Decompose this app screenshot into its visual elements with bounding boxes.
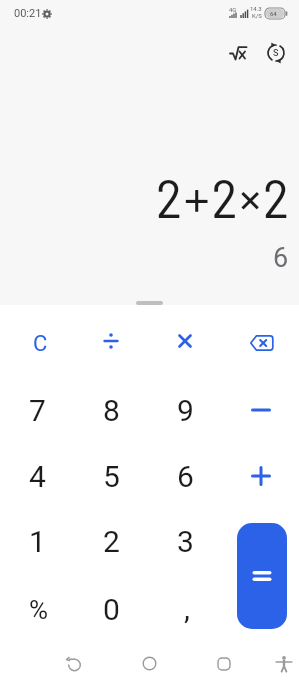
button[interactable] [58,648,90,680]
button[interactable] [79,309,143,373]
staticText: 14.3 [250,5,262,12]
button[interactable] [208,648,240,680]
button[interactable]: 9 [153,378,217,442]
staticText: 0 [103,592,120,627]
button[interactable] [229,444,293,508]
button[interactable]: 8 [79,378,143,442]
button[interactable]: 5 [79,444,143,508]
button[interactable]: 7 [5,378,69,442]
button[interactable] [268,648,299,680]
button[interactable]: 4 [5,444,69,508]
staticText: 3 [177,524,194,559]
button[interactable]: 2 [79,509,143,573]
button[interactable]: , [155,576,219,640]
button[interactable] [237,523,287,629]
staticText: % [29,595,49,625]
button[interactable] [134,648,166,680]
staticText: 5 [103,459,120,494]
staticText: S [273,48,279,59]
button[interactable] [230,311,294,375]
staticText: 4 [29,459,46,494]
button[interactable]: 6 [153,444,217,508]
staticText: , [184,591,190,626]
button[interactable]: 0 [79,577,143,641]
staticText: C [33,331,48,357]
staticText: 8 [103,393,120,428]
button[interactable]: 1 [5,509,69,573]
button[interactable]: % [7,578,71,642]
button[interactable] [153,309,217,373]
button[interactable] [229,378,293,442]
staticText: 64 [270,10,277,17]
staticText: 6 [177,459,194,494]
staticText: 6 [273,242,289,274]
button[interactable] [224,40,252,66]
staticText: 2 [103,524,120,559]
staticText: 00:21 [14,7,42,20]
staticText: K/S [252,12,262,19]
button[interactable]: S [262,39,290,67]
button[interactable]: 3 [153,509,217,573]
button[interactable]: C [8,312,72,376]
staticText: 7 [29,393,46,428]
staticText: 2+2×2 [156,163,291,225]
staticText: 4G [229,6,237,13]
staticText: 9 [177,393,194,428]
staticText: 1 [29,524,46,559]
